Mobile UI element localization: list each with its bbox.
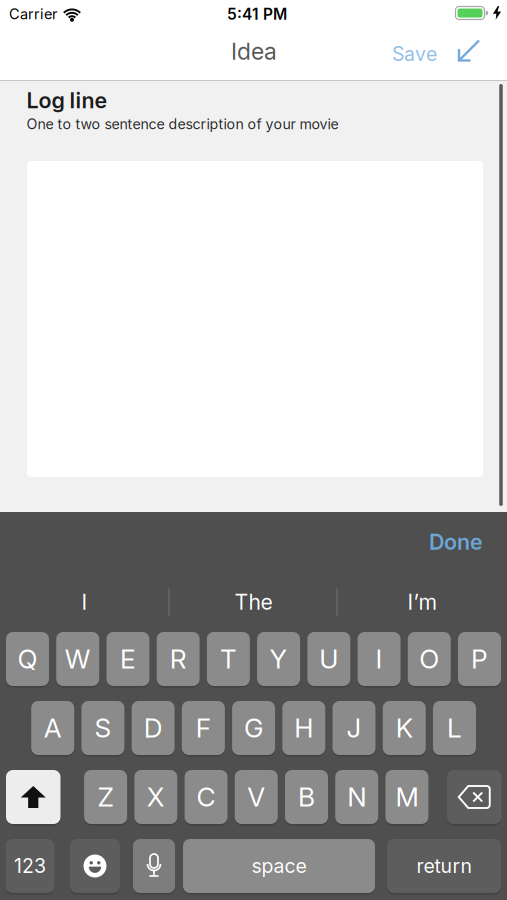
button[interactable]: Y [257, 631, 300, 687]
staticText: W [65, 643, 91, 675]
staticText: I’m [407, 589, 437, 615]
button[interactable]: A [31, 700, 74, 756]
staticText: H [294, 712, 313, 744]
staticText: space [251, 854, 306, 878]
button[interactable]: U [307, 631, 350, 687]
staticText: O [419, 643, 439, 675]
button[interactable]: T [207, 631, 250, 687]
button[interactable]: Save [392, 42, 437, 66]
staticText: Q [17, 643, 37, 675]
button[interactable]: The [173, 580, 333, 624]
staticText: 5:41 PM [227, 5, 287, 23]
button[interactable]: O [408, 631, 451, 687]
button[interactable]: I [4, 580, 164, 624]
button[interactable]: Dictate [133, 838, 175, 894]
staticText: Save [392, 42, 437, 66]
button[interactable]: L [433, 700, 476, 756]
staticText: F [196, 712, 211, 744]
staticText: I [81, 589, 87, 615]
staticText: C [196, 781, 215, 813]
button[interactable]: Q [6, 631, 49, 687]
button[interactable]: F [182, 700, 225, 756]
button[interactable]: E [106, 631, 149, 687]
button[interactable]: G [232, 700, 275, 756]
staticText: return [416, 854, 471, 878]
staticText: K [396, 712, 413, 744]
staticText: 123 [14, 854, 46, 878]
button[interactable]: M [385, 769, 428, 825]
staticText: X [147, 781, 165, 813]
staticText: D [144, 712, 163, 744]
button[interactable]: S [81, 700, 124, 756]
button[interactable]: R [157, 631, 200, 687]
staticText: U [319, 643, 338, 675]
button[interactable]: I’m [342, 580, 502, 624]
staticText: Log line [26, 87, 107, 113]
staticText: R [170, 643, 187, 675]
button[interactable]: Z [84, 769, 127, 825]
button[interactable]: D [132, 700, 175, 756]
button[interactable]: I [357, 631, 400, 687]
staticText: Done [429, 529, 483, 555]
button[interactable]: P [458, 631, 501, 687]
button[interactable]: X [134, 769, 177, 825]
button[interactable]: Shift [6, 769, 60, 825]
staticText: V [247, 781, 265, 813]
button[interactable]: 123 [5, 838, 54, 894]
staticText: M [395, 781, 418, 813]
staticText: N [347, 781, 366, 813]
staticText: I [375, 643, 382, 675]
staticText: Z [98, 781, 114, 813]
button[interactable]: space [183, 838, 375, 894]
button[interactable]: B [285, 769, 328, 825]
button[interactable]: K [383, 700, 426, 756]
button[interactable]: C [184, 769, 227, 825]
button[interactable]: Done [429, 529, 483, 555]
staticText: One to two sentence description of your … [26, 115, 338, 133]
button[interactable]: Emoji [70, 838, 120, 894]
staticText: The [234, 589, 272, 615]
staticText: L [447, 712, 462, 744]
staticText: G [244, 712, 263, 744]
staticText: P [471, 643, 488, 675]
staticText: A [44, 712, 62, 744]
button[interactable]: N [335, 769, 378, 825]
button[interactable]: Dismiss keyboard [454, 39, 482, 62]
staticText: B [298, 781, 315, 813]
button[interactable]: H [282, 700, 325, 756]
staticText: J [346, 712, 361, 744]
button[interactable]: W [56, 631, 99, 687]
staticText: Idea [231, 38, 277, 65]
button[interactable]: V [235, 769, 278, 825]
button[interactable]: J [332, 700, 375, 756]
staticText: Y [270, 643, 288, 675]
button[interactable]: return [387, 838, 501, 894]
button[interactable]: Delete [447, 769, 501, 825]
staticText: Carrier [9, 5, 57, 23]
staticText: T [220, 643, 237, 675]
staticText: E [120, 643, 136, 675]
staticText: S [94, 712, 111, 744]
